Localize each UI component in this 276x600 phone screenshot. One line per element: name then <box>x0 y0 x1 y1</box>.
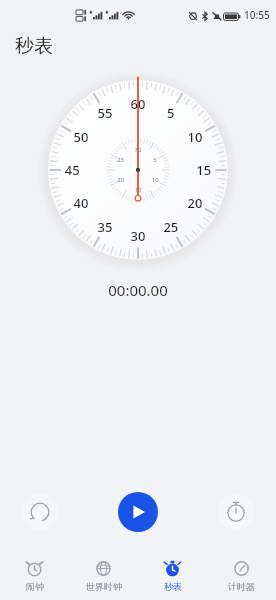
button[interactable]: 闹钟 <box>0 550 69 600</box>
staticText: 秒表 <box>15 34 53 58</box>
button[interactable]: 计时器 <box>207 550 276 600</box>
staticText: 00:00.00 <box>0 280 276 300</box>
button[interactable]: 秒表 <box>138 550 207 600</box>
staticText: 闹钟 <box>26 581 44 592</box>
staticText: 10:55 <box>244 8 270 22</box>
button[interactable]: Lap <box>22 494 58 530</box>
button[interactable]: 世界时钟 <box>69 550 138 600</box>
button[interactable]: Timer <box>218 494 254 530</box>
button[interactable]: Start <box>118 492 158 532</box>
staticText: 世界时钟 <box>86 581 122 592</box>
staticText: 秒表 <box>164 581 182 592</box>
staticText: 计时器 <box>228 581 255 592</box>
